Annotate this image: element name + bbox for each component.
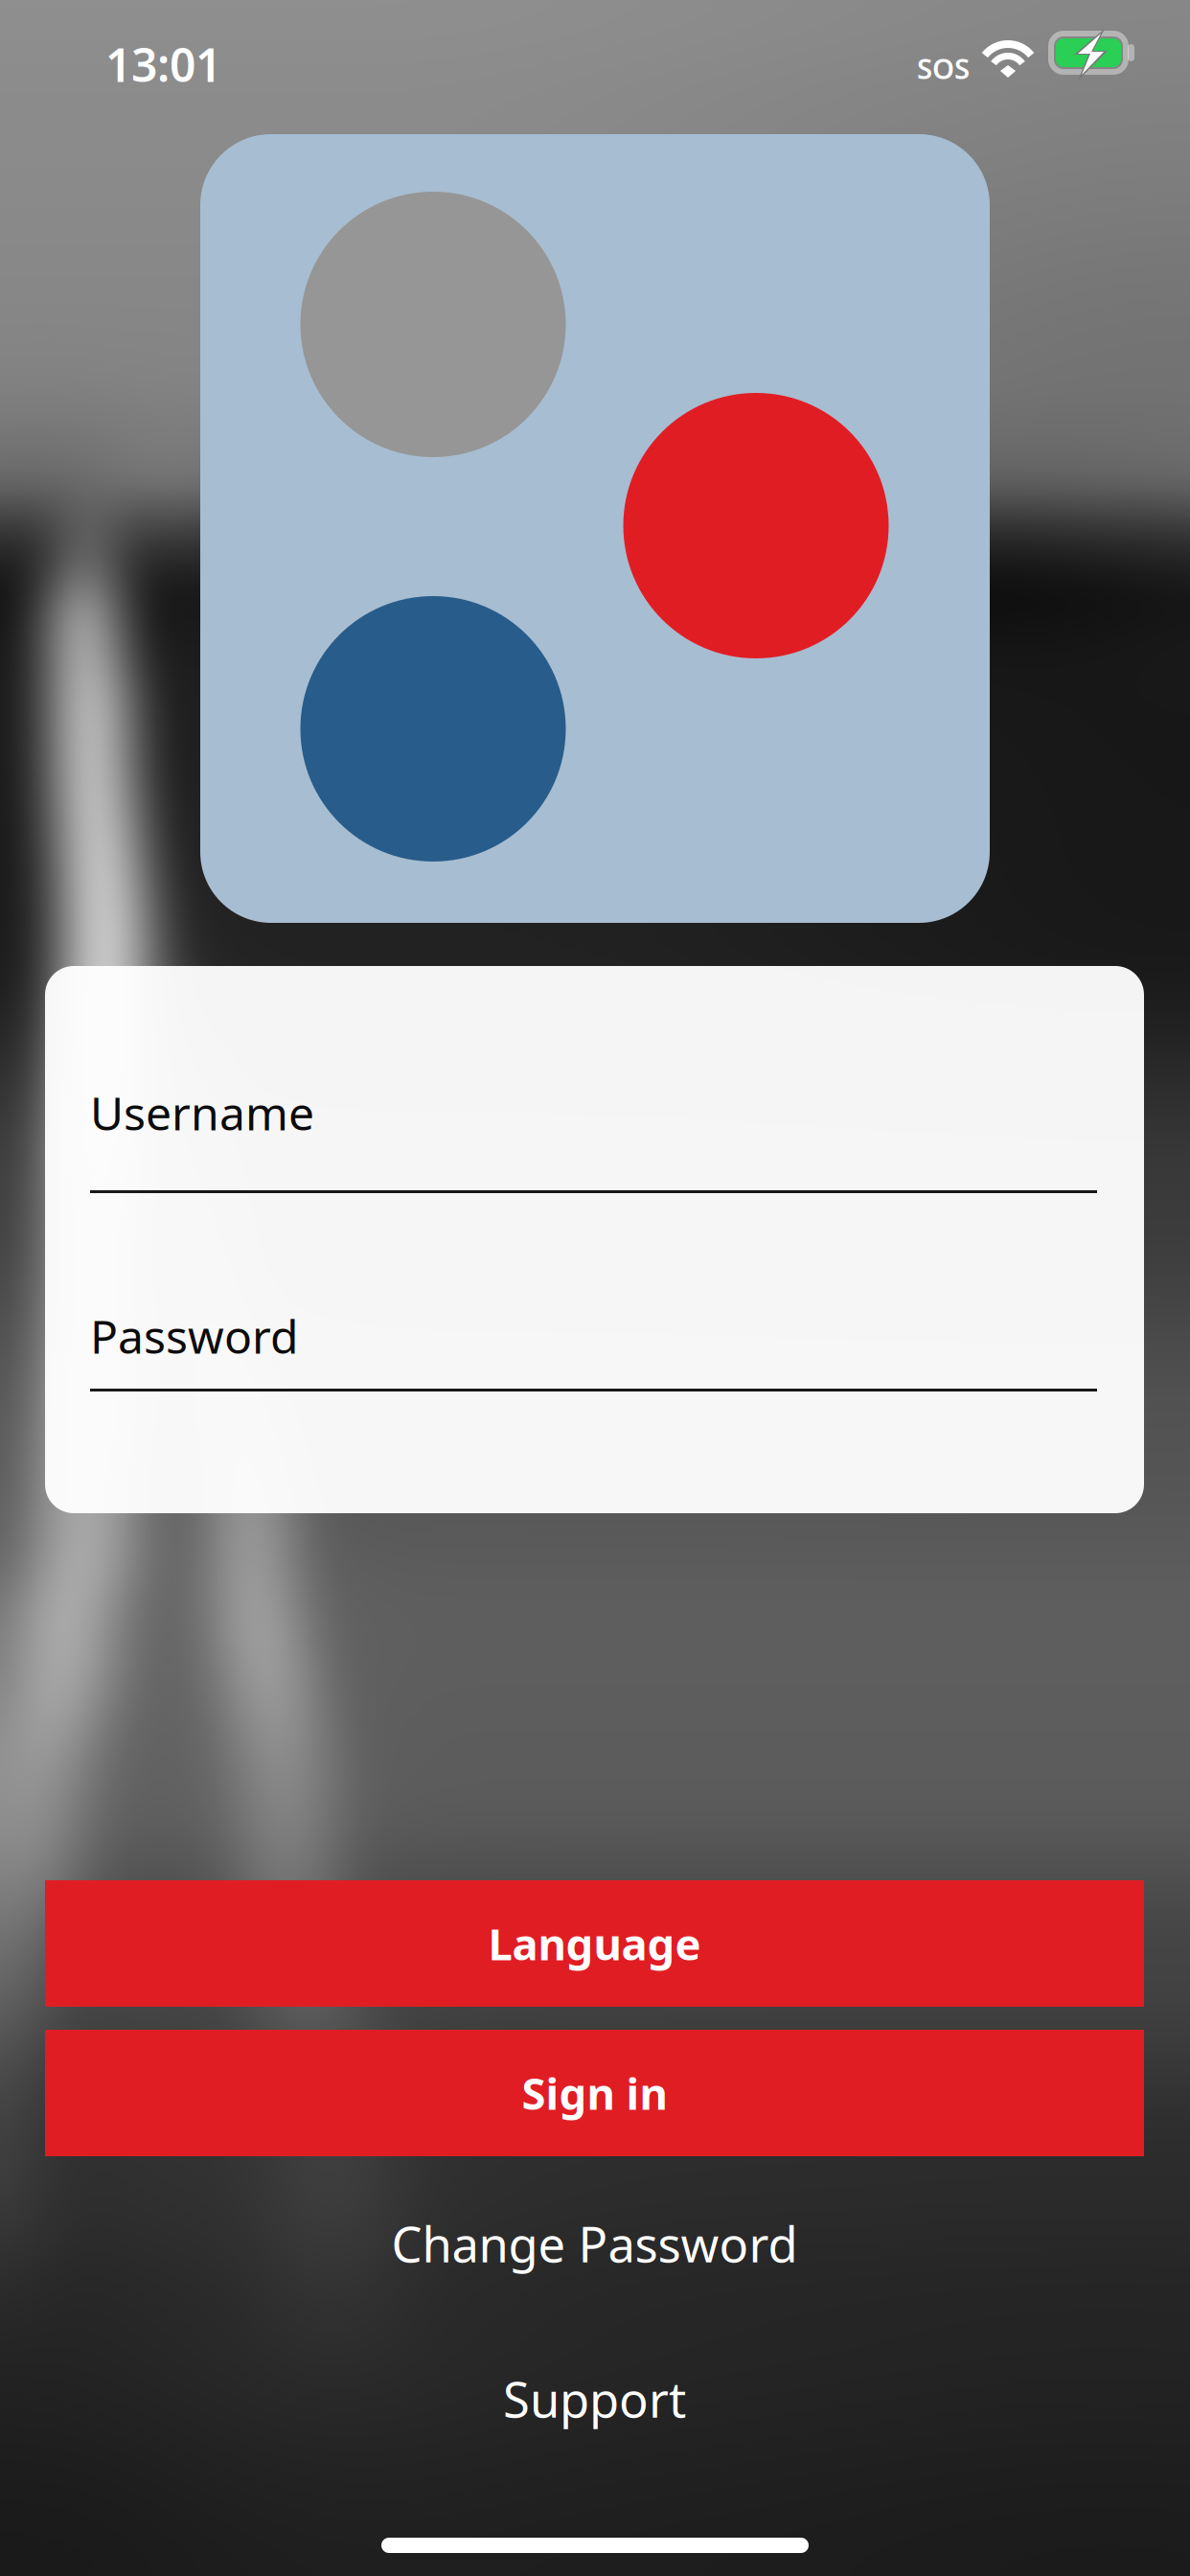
staticText: Support xyxy=(503,2367,686,2431)
staticText: Language xyxy=(488,1915,701,1972)
staticText: Password xyxy=(90,1305,299,1366)
button[interactable]: Sign in xyxy=(45,2030,1144,2156)
button[interactable]: Language xyxy=(45,1880,1144,2007)
staticText: Sign in xyxy=(522,2064,667,2122)
staticText: Change Password xyxy=(391,2211,798,2276)
staticText: 13:01 xyxy=(105,34,221,95)
staticText: SOS xyxy=(917,49,970,87)
button[interactable]: Change Password xyxy=(45,2197,1144,2289)
button[interactable]: Support xyxy=(45,2353,1144,2445)
staticText: Username xyxy=(90,1082,314,1143)
